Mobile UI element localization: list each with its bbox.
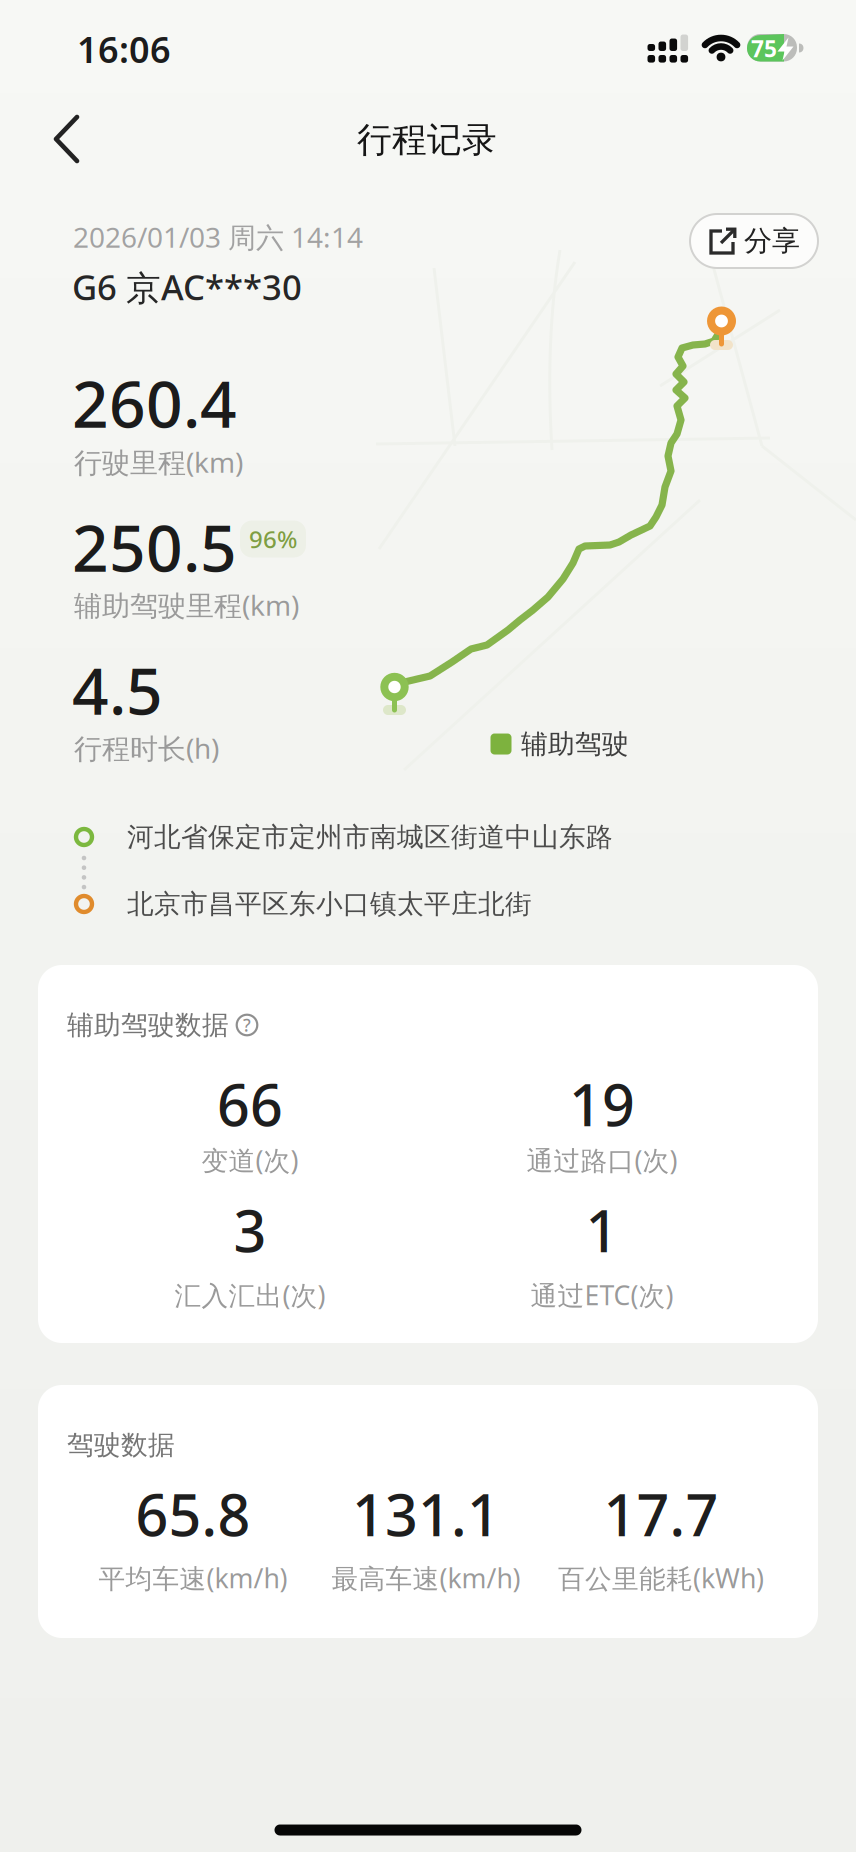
staticText: 通过路口(次) <box>526 1142 677 1178</box>
button[interactable]: Back <box>33 107 97 171</box>
button[interactable]: 帮助 <box>234 1012 260 1038</box>
staticText: 行驶里程(km) <box>74 443 243 481</box>
staticText: 131.1 <box>352 1476 500 1552</box>
staticText: 250.5 <box>72 504 237 589</box>
staticText: 3 <box>233 1192 266 1268</box>
staticText: 辅助驾驶 <box>521 728 629 760</box>
staticText: 变道(次) <box>201 1142 298 1178</box>
staticText: 河北省保定市定州市南城区街道中山东路 <box>127 821 613 853</box>
staticText: 辅助驾驶数据 <box>67 1009 229 1041</box>
staticText: 行程时长(h) <box>74 729 219 767</box>
staticText: 通过ETC(次) <box>530 1277 673 1313</box>
staticText: 北京市昌平区东小口镇太平庄北街 <box>127 888 532 920</box>
staticText: 最高车速(km/h) <box>331 1560 520 1596</box>
staticText: G6 京AC***30 <box>72 264 302 310</box>
staticText: 分享 <box>744 224 800 258</box>
staticText: 66 <box>217 1066 283 1142</box>
staticText: 17.7 <box>603 1476 718 1552</box>
staticText: 2026/01/03 周六 14:14 <box>73 218 363 256</box>
staticText: 汇入汇出(次) <box>174 1277 325 1313</box>
staticText: 驾驶数据 <box>67 1429 175 1461</box>
staticText: 65.8 <box>135 1476 250 1552</box>
staticText: 百公里能耗(kWh) <box>558 1560 764 1596</box>
staticText: 4.5 <box>72 647 163 732</box>
staticText: 辅助驾驶里程(km) <box>74 586 299 624</box>
staticText: 16:06 <box>77 25 171 73</box>
staticText: 平均车速(km/h) <box>98 1560 287 1596</box>
staticText: 260.4 <box>72 360 237 445</box>
staticText: 75 <box>751 33 777 63</box>
staticText: 1 <box>585 1192 618 1268</box>
staticText: 行程记录 <box>357 119 497 161</box>
staticText: ? <box>243 1013 251 1036</box>
staticText: 19 <box>569 1066 635 1142</box>
staticText: 96% <box>249 523 297 555</box>
button[interactable]: 分享 <box>690 214 818 268</box>
